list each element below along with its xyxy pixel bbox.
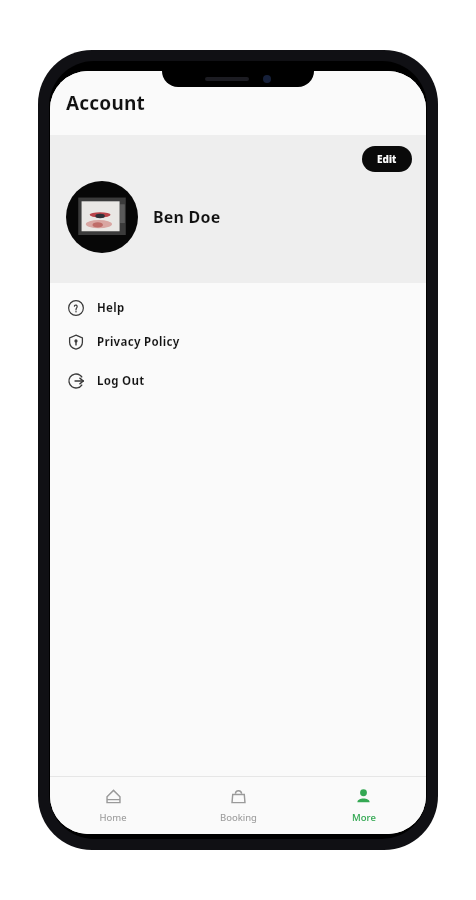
button[interactable]: Help <box>50 291 426 325</box>
other: Home <box>105 788 122 805</box>
staticText: Account <box>66 90 145 116</box>
staticText: Home <box>99 811 127 824</box>
staticText: Ben Doe <box>153 206 221 228</box>
button[interactable]: Home <box>50 777 176 834</box>
button[interactable]: Privacy Policy <box>50 325 426 359</box>
button[interactable]: Edit <box>362 146 412 172</box>
staticText: Log Out <box>97 373 145 389</box>
button[interactable]: Booking <box>176 777 301 834</box>
button[interactable]: More <box>301 777 426 834</box>
other: Booking <box>230 788 247 805</box>
staticText: More <box>352 811 376 824</box>
staticText: Privacy Policy <box>97 334 180 350</box>
other: More <box>355 788 372 805</box>
staticText: Help <box>97 300 125 316</box>
button[interactable]: Log Out <box>50 364 426 398</box>
staticText: Booking <box>220 811 257 824</box>
staticText: Edit <box>377 152 397 166</box>
